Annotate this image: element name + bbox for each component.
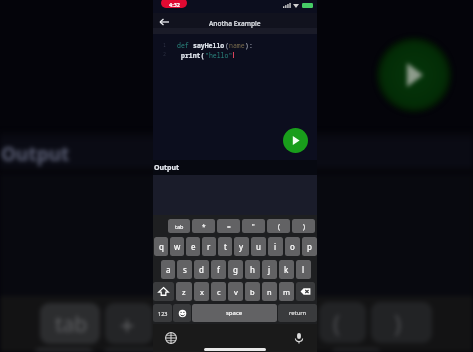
button[interactable]: z bbox=[176, 282, 192, 301]
staticText: o bbox=[290, 241, 295, 252]
staticText: a bbox=[166, 264, 171, 275]
staticText: tab bbox=[55, 310, 88, 339]
button[interactable]: Voice input bbox=[292, 331, 306, 345]
button[interactable]: j bbox=[262, 260, 277, 279]
button[interactable]: h bbox=[245, 260, 260, 279]
button[interactable]: t bbox=[218, 237, 232, 256]
button[interactable]: * bbox=[192, 219, 215, 233]
staticText: f bbox=[217, 264, 220, 275]
button[interactable]: ( bbox=[267, 219, 290, 233]
staticText: ) bbox=[394, 306, 402, 339]
button[interactable]: r bbox=[202, 237, 216, 256]
button[interactable]: tab bbox=[168, 219, 190, 233]
button[interactable]: p bbox=[302, 237, 317, 256]
button[interactable]: y bbox=[234, 237, 249, 256]
staticText: + bbox=[120, 308, 135, 342]
staticText: ) bbox=[303, 222, 305, 231]
staticText: ( bbox=[333, 306, 341, 339]
staticText: * bbox=[202, 222, 206, 231]
button[interactable]: l bbox=[296, 260, 311, 279]
button[interactable]: Change keyboard bbox=[164, 331, 178, 345]
staticText: "hello" bbox=[205, 51, 233, 60]
staticText: z bbox=[182, 287, 186, 297]
button[interactable]: space bbox=[192, 304, 277, 322]
button[interactable]: ) bbox=[292, 219, 315, 233]
button[interactable]: Backspace bbox=[296, 282, 315, 301]
staticText: 4:32 bbox=[169, 1, 180, 8]
staticText: ): bbox=[245, 41, 253, 50]
button[interactable]: i bbox=[268, 237, 283, 256]
button[interactable]: n bbox=[262, 282, 277, 301]
button[interactable]: c bbox=[211, 282, 226, 301]
button[interactable]: o bbox=[285, 237, 300, 256]
button[interactable]: 123 bbox=[153, 304, 172, 322]
button[interactable]: m bbox=[279, 282, 294, 301]
button[interactable]: g bbox=[228, 260, 243, 279]
staticText: Anotha Example bbox=[209, 19, 261, 28]
staticText: Output bbox=[1, 141, 70, 167]
button[interactable]: Back bbox=[156, 14, 172, 30]
staticText: 2 bbox=[163, 51, 167, 58]
staticText: " bbox=[252, 222, 255, 231]
staticText: l bbox=[302, 264, 305, 275]
button[interactable]: w bbox=[170, 237, 184, 256]
button[interactable]: Shift bbox=[153, 282, 174, 301]
button[interactable]: Run bbox=[283, 128, 308, 153]
staticText: u bbox=[256, 241, 261, 252]
staticText: t bbox=[224, 241, 227, 252]
button[interactable]: = bbox=[217, 219, 240, 233]
button[interactable]: d bbox=[194, 260, 209, 279]
staticText: k bbox=[284, 264, 289, 275]
staticText: c bbox=[217, 287, 221, 297]
staticText: x bbox=[200, 287, 204, 297]
staticText: y bbox=[239, 241, 244, 252]
button[interactable]: f bbox=[211, 260, 226, 279]
button[interactable]: q bbox=[154, 237, 168, 256]
staticText: i bbox=[274, 241, 277, 252]
staticText: g bbox=[233, 264, 238, 275]
button[interactable]: return bbox=[278, 304, 317, 322]
button[interactable]: v bbox=[228, 282, 243, 301]
staticText: return bbox=[289, 309, 307, 317]
staticText: name bbox=[229, 41, 245, 50]
button[interactable]: Emoji bbox=[173, 304, 191, 322]
staticText: 1 bbox=[163, 42, 167, 49]
button[interactable]: " bbox=[242, 219, 265, 233]
button[interactable]: k bbox=[279, 260, 294, 279]
staticText: b bbox=[250, 287, 255, 297]
staticText: ( bbox=[278, 222, 280, 231]
staticText: r bbox=[207, 241, 211, 252]
staticText: sayHello bbox=[193, 41, 225, 50]
staticText: space bbox=[226, 309, 243, 317]
staticText: v bbox=[234, 287, 238, 297]
staticText: 123 bbox=[158, 310, 168, 317]
staticText: j bbox=[268, 264, 271, 275]
staticText: = bbox=[227, 222, 231, 231]
staticText: def bbox=[177, 41, 193, 50]
button[interactable]: x bbox=[194, 282, 209, 301]
staticText: w bbox=[174, 241, 181, 252]
button[interactable]: b bbox=[245, 282, 260, 301]
staticText: Output bbox=[154, 163, 180, 173]
staticText: e bbox=[191, 241, 196, 252]
button[interactable]: u bbox=[251, 237, 266, 256]
staticText: p bbox=[307, 241, 312, 252]
staticText: q bbox=[159, 241, 164, 252]
staticText: tab bbox=[175, 223, 184, 230]
staticText: print( bbox=[181, 51, 205, 60]
staticText: m bbox=[283, 287, 291, 297]
button[interactable]: a bbox=[161, 260, 175, 279]
staticText: h bbox=[250, 264, 255, 275]
staticText: n bbox=[267, 287, 272, 297]
button[interactable]: s bbox=[177, 260, 192, 279]
staticText: s bbox=[183, 264, 187, 275]
staticText: ( bbox=[225, 41, 229, 50]
staticText: d bbox=[199, 264, 204, 275]
button[interactable]: e bbox=[186, 237, 200, 256]
